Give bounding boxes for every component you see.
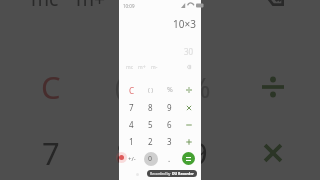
staticText: 30: [184, 46, 194, 57]
staticText: mc: [126, 64, 134, 71]
button[interactable]: .: [160, 150, 179, 167]
staticText: m-: [151, 64, 158, 71]
staticText: 10:09: [123, 3, 135, 9]
button[interactable]: mc: [22, 0, 68, 33]
button[interactable]: m+: [136, 58, 148, 76]
button[interactable]: Screen recorder: [116, 152, 127, 163]
button[interactable]: 2: [141, 133, 160, 150]
button[interactable]: mc: [124, 58, 136, 76]
button[interactable]: 0: [141, 150, 160, 167]
staticText: m-: [125, 0, 150, 11]
staticText: 9: [167, 102, 172, 113]
button[interactable]: m+: [68, 0, 114, 33]
button[interactable]: 7: [13, 120, 88, 180]
staticText: 8: [116, 132, 134, 174]
staticText: %: [167, 85, 173, 95]
button[interactable]: C: [122, 81, 141, 99]
button[interactable]: [236, 120, 310, 180]
button[interactable]: 4: [122, 116, 141, 133]
staticText: 1: [129, 136, 134, 147]
button[interactable]: Backspace: [256, 0, 295, 33]
staticText: 9: [190, 132, 208, 174]
staticText: m+: [76, 0, 106, 11]
staticText: Recorded by: [150, 171, 172, 176]
button[interactable]: 9: [160, 99, 179, 116]
button[interactable]: [236, 54, 310, 120]
button[interactable]: 6: [160, 116, 179, 133]
button[interactable]: Backspace: [184, 58, 194, 76]
staticText: 5: [148, 119, 153, 130]
button[interactable]: 5: [141, 116, 160, 133]
button[interactable]: 1: [122, 133, 141, 150]
button[interactable]: [179, 116, 198, 133]
staticText: .: [168, 153, 171, 164]
button[interactable]: 3: [160, 133, 179, 150]
button[interactable]: m-: [148, 58, 160, 76]
staticText: +/-: [128, 155, 136, 163]
button[interactable]: Back: [178, 169, 188, 179]
button[interactable]: 8: [88, 120, 162, 180]
button[interactable]: [179, 99, 198, 116]
staticText: C: [41, 66, 61, 108]
button[interactable]: [179, 81, 198, 99]
staticText: 4: [129, 119, 134, 130]
staticText: C: [129, 85, 135, 96]
button[interactable]: Home: [155, 169, 165, 179]
button[interactable]: +/-: [122, 150, 141, 167]
staticText: 3: [167, 136, 172, 147]
button[interactable]: C: [13, 54, 88, 120]
button[interactable]: 7: [122, 99, 141, 116]
staticText: ( ): [148, 86, 154, 94]
staticText: 8: [148, 102, 153, 113]
button[interactable]: m-: [114, 0, 160, 33]
button[interactable]: [179, 133, 198, 150]
staticText: ( ): [115, 71, 135, 103]
staticText: 6: [167, 119, 172, 130]
staticText: %: [188, 69, 211, 106]
button[interactable]: ( ): [141, 81, 160, 99]
staticText: 7: [42, 132, 60, 174]
staticText: DU Recorder: [172, 171, 194, 176]
button[interactable]: %: [162, 54, 236, 120]
button[interactable]: 9: [162, 120, 236, 180]
staticText: 7: [129, 102, 134, 113]
staticText: 0: [148, 154, 153, 164]
button[interactable]: 8: [141, 99, 160, 116]
button[interactable]: %: [160, 81, 179, 99]
staticText: 2: [148, 136, 153, 147]
staticText: m+: [138, 64, 146, 71]
staticText: 10×3: [173, 17, 196, 31]
button[interactable]: [179, 150, 198, 167]
staticText: mc: [31, 0, 59, 11]
button[interactable]: ( ): [88, 54, 162, 120]
button[interactable]: Recents: [132, 169, 142, 179]
